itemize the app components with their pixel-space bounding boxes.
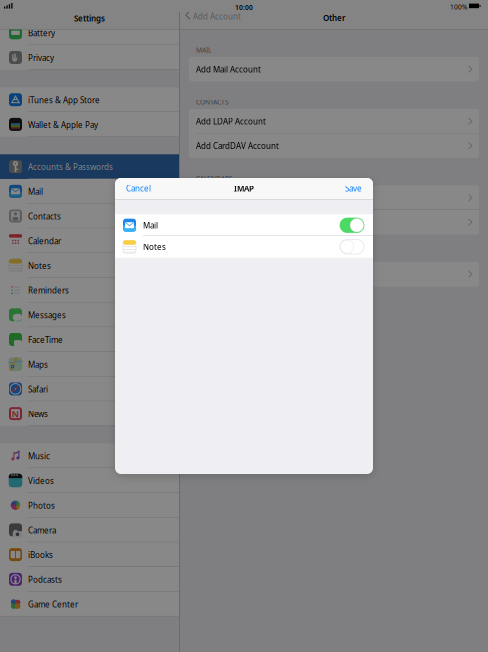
button[interactable]: Notes bbox=[0, 253, 179, 278]
button[interactable]: Videos bbox=[0, 468, 179, 493]
staticText: Camera bbox=[28, 525, 56, 536]
staticText: Save bbox=[345, 183, 362, 194]
button[interactable]: Maps bbox=[0, 352, 179, 377]
button[interactable]: Podcasts bbox=[0, 567, 179, 592]
staticText: Accounts & Passwords bbox=[28, 162, 113, 172]
staticText: Cancel bbox=[126, 183, 151, 194]
button[interactable]: Calendar bbox=[0, 228, 179, 253]
staticText: Add CardDAV Account bbox=[196, 141, 279, 151]
staticText: Privacy bbox=[28, 53, 54, 63]
staticText: MAIL bbox=[196, 45, 211, 54]
staticText: Add CalDAV Account bbox=[196, 193, 273, 203]
staticText: iBooks bbox=[28, 550, 53, 560]
staticText: Maps bbox=[28, 359, 48, 370]
staticText: Safari bbox=[28, 384, 48, 395]
staticText: Reminders bbox=[28, 285, 69, 296]
staticText: Mail bbox=[143, 220, 158, 231]
button[interactable]: Cancel bbox=[122, 178, 155, 199]
staticText: N bbox=[11, 407, 19, 420]
button[interactable]: iBooks bbox=[0, 542, 179, 567]
staticText: Add Mail Account bbox=[196, 64, 261, 75]
staticText: Videos bbox=[28, 476, 54, 486]
button[interactable]: Add CardDAV Account bbox=[189, 133, 479, 158]
button[interactable]: Privacy bbox=[0, 45, 179, 70]
button[interactable]: Mail bbox=[0, 179, 179, 204]
staticText: Add Account bbox=[193, 11, 241, 22]
staticText: Messages bbox=[28, 310, 66, 320]
staticText: 100% bbox=[450, 2, 468, 11]
staticText: CONTACTS bbox=[196, 97, 229, 106]
staticText: IMAP bbox=[234, 183, 254, 194]
staticText: Settings bbox=[74, 13, 105, 24]
button[interactable]: Game Center bbox=[0, 592, 179, 616]
button[interactable]: Contacts bbox=[0, 204, 179, 228]
button[interactable]: Battery bbox=[0, 20, 179, 45]
button[interactable]: Add CalDAV Account bbox=[189, 185, 479, 210]
staticText: iTunes & App Store bbox=[28, 95, 100, 105]
staticText: 10:00 bbox=[235, 3, 253, 12]
button[interactable]: Mail bbox=[115, 214, 373, 236]
button[interactable]: Camera bbox=[0, 518, 179, 542]
button[interactable]: Add Account bbox=[184, 6, 246, 24]
staticText: Game Center bbox=[28, 599, 78, 610]
staticText: Battery bbox=[28, 28, 55, 38]
staticText: Podcasts bbox=[28, 574, 62, 585]
button[interactable]: Add Mail Account bbox=[189, 57, 479, 81]
button[interactable]: Photos bbox=[0, 493, 179, 518]
button[interactable]: Add macOS Server Account bbox=[189, 262, 479, 286]
staticText: SERVERS bbox=[196, 250, 224, 259]
staticText: Mail bbox=[28, 186, 43, 197]
staticText: FaceTime bbox=[28, 335, 63, 345]
button[interactable]: Save bbox=[341, 178, 366, 199]
button[interactable]: Reminders bbox=[0, 278, 179, 302]
staticText: Photos bbox=[28, 500, 55, 511]
button[interactable]: FaceTime bbox=[0, 327, 179, 352]
staticText: Music bbox=[28, 451, 50, 461]
button[interactable]: Add Subscribed Calendar bbox=[189, 210, 479, 234]
button[interactable]: Wallet & Apple Pay bbox=[0, 112, 179, 137]
staticText: Notes bbox=[143, 242, 166, 252]
staticText: Contacts bbox=[28, 211, 61, 222]
button[interactable]: Notes bbox=[115, 236, 373, 257]
button[interactable]: N bbox=[0, 401, 179, 426]
button[interactable]: Accounts & Passwords bbox=[0, 154, 179, 179]
button[interactable]: iTunes & App Store bbox=[0, 87, 179, 112]
staticText: Other bbox=[323, 13, 345, 23]
button[interactable]: Add LDAP Account bbox=[189, 109, 479, 133]
button[interactable]: Music bbox=[0, 443, 179, 468]
staticText: Add LDAP Account bbox=[196, 116, 266, 127]
staticText: News bbox=[28, 409, 48, 419]
button[interactable]: Safari bbox=[0, 377, 179, 401]
staticText: CALENDARS bbox=[196, 174, 233, 183]
staticText: Wallet & Apple Pay bbox=[28, 119, 98, 130]
staticText: Calendar bbox=[28, 236, 61, 246]
button[interactable]: Messages bbox=[0, 302, 179, 327]
staticText: Notes bbox=[28, 260, 51, 271]
